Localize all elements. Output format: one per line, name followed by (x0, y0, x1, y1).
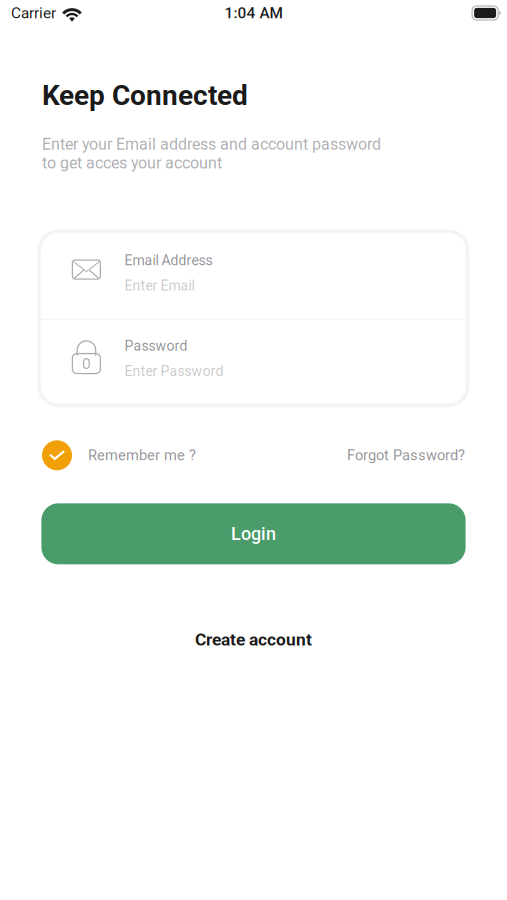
staticText: Login (231, 523, 276, 544)
staticText: Create account (195, 629, 312, 650)
staticText: Carrier (11, 4, 56, 22)
staticText: Forgot Password? (347, 447, 465, 464)
button[interactable]: Login (41, 503, 466, 564)
button[interactable]: Email Address (41, 233, 466, 319)
staticText: Password (124, 338, 187, 354)
staticText: 1:04 AM (224, 4, 282, 22)
button[interactable]: Create account (195, 629, 312, 650)
staticText: Remember me ? (88, 447, 196, 464)
staticText: Enter your Email address and account pas… (42, 135, 381, 172)
staticText: Enter Email (124, 278, 194, 294)
button[interactable]: Password (41, 320, 466, 403)
button[interactable]: Remember me ? (42, 440, 196, 470)
staticText: Email Address (124, 252, 212, 269)
button[interactable]: Forgot Password? (347, 447, 465, 464)
staticText: Enter Password (124, 363, 223, 379)
staticText: Keep Connected (42, 79, 248, 112)
